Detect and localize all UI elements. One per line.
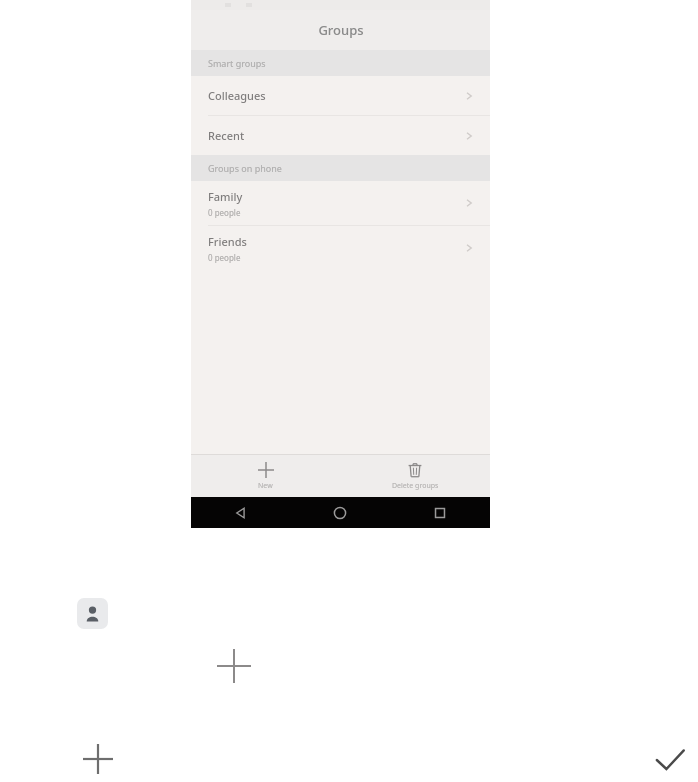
button[interactable]: Recents — [390, 497, 490, 528]
staticText: Smart groups — [208, 57, 266, 69]
button[interactable]: Back — [191, 497, 290, 528]
staticText: Groups — [318, 21, 364, 39]
button[interactable]: Add — [211, 643, 257, 689]
staticText: Recent — [208, 128, 245, 143]
button[interactable]: Colleagues — [191, 76, 490, 115]
button[interactable]: Home — [290, 497, 390, 528]
button[interactable]: Confirm — [650, 740, 690, 780]
button[interactable]: Family — [191, 181, 490, 225]
button[interactable]: Add item — [76, 737, 120, 781]
staticText: New — [258, 481, 273, 491]
button[interactable]: New — [191, 455, 340, 497]
button[interactable]: Recent — [191, 116, 490, 155]
staticText: Friends — [208, 234, 247, 249]
staticText: Colleagues — [208, 88, 266, 103]
staticText: Family — [208, 189, 243, 204]
staticText: 0 people — [208, 207, 241, 218]
staticText: Groups on phone — [208, 162, 282, 174]
button[interactable]: Contact — [77, 598, 108, 629]
button[interactable]: Friends — [191, 226, 490, 270]
button[interactable]: Delete groups — [340, 455, 490, 497]
staticText: 0 people — [208, 252, 241, 263]
staticText: Delete groups — [392, 481, 439, 491]
